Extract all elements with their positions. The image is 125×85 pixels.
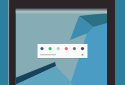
other: Google search	[0, 0, 125, 85]
button[interactable]: Google search	[0, 0, 125, 85]
